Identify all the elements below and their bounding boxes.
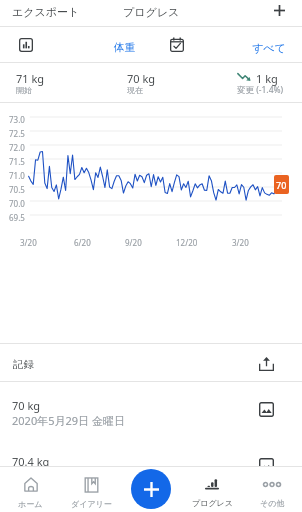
button[interactable]: ダイアリー [61,467,122,512]
staticText: 70 kg [12,398,41,413]
staticText: 70.5 [9,184,25,195]
button[interactable]: Add [269,0,289,21]
button[interactable]: 70.4 kg [0,438,302,494]
staticText: 71 kg [16,71,45,86]
button[interactable]: プログレス [182,467,242,512]
button[interactable] [0,27,151,62]
staticText: 70 kg [127,71,156,86]
button[interactable] [151,27,302,62]
staticText: その他 [260,498,285,508]
staticText: 1 kg [256,71,278,86]
staticText: 71.0 [9,170,25,181]
staticText: 変更 (-1.4%) [237,84,284,96]
staticText: 6/20 [74,237,91,248]
staticText: 72.5 [9,128,25,139]
staticText: 72.0 [9,142,25,153]
button[interactable]: Add entry [131,469,171,509]
staticText: プログレス [123,5,180,19]
staticText: 開始 [16,85,32,95]
button[interactable]: 70 kg [0,382,302,438]
staticText: ホーム [18,499,43,509]
staticText: 現在 [127,85,143,95]
staticText: 2020年5月29日 金曜日 [12,413,125,428]
staticText: 70.0 [9,198,25,209]
staticText: 3/20 [232,237,249,248]
staticText: エクスポート [12,5,80,19]
button[interactable]: その他 [242,467,302,512]
staticText: 71.5 [9,156,25,167]
staticText: すべて [252,41,286,55]
staticText: 70.4 kg [12,454,50,469]
staticText: 3/20 [20,237,37,248]
staticText: 12/20 [176,237,198,248]
staticText: 70 [276,179,287,191]
staticText: 69.5 [9,212,25,223]
staticText: 記録 [13,358,34,371]
button[interactable]: ホーム [0,467,61,512]
staticText: ダイアリー [71,499,112,509]
button[interactable]: Export records [254,352,278,376]
staticText: プログレス [192,498,233,508]
staticText: 73.0 [9,114,25,125]
staticText: 2020年5月28日 木曜日 [12,469,125,484]
staticText: 9/20 [125,237,142,248]
staticText: 体重 [114,41,135,54]
